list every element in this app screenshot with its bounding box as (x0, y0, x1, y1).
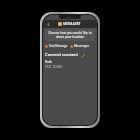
staticText: Choose how you would like to share your … (47, 31, 93, 39)
other: Edit contact (81, 53, 85, 57)
staticText: Current contact (45, 52, 79, 58)
staticText: Ruth (45, 60, 53, 64)
staticText: 0741 122446 (45, 65, 62, 69)
staticText: Messenger App (74, 44, 95, 48)
button[interactable]: MEDALERT (58, 22, 81, 26)
staticText: MEDALERT (63, 22, 81, 26)
button[interactable]: Messenger App (70, 43, 95, 49)
button[interactable]: Text Message (45, 43, 70, 49)
staticText: Text Message (49, 44, 68, 48)
button[interactable]: Current contact (45, 52, 95, 58)
button[interactable]: Back (45, 21, 51, 27)
